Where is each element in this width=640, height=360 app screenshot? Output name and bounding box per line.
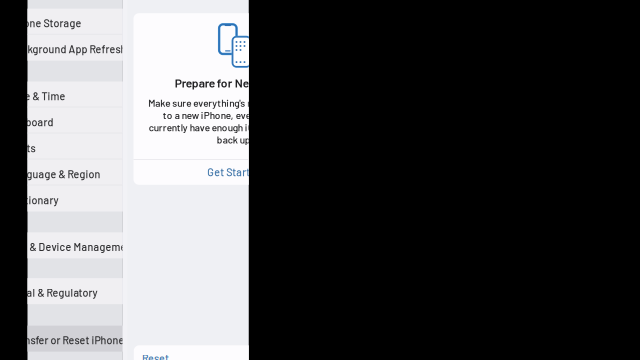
button[interactable]: Keyboard — [27, 0, 123, 26]
staticText: Prepare for New iPhone — [175, 75, 295, 90]
button[interactable]: Dictionary — [27, 0, 123, 26]
staticText: Transfer or Reset iPhone — [8, 334, 124, 346]
staticText: iPhone Storage — [8, 17, 81, 29]
staticText: back up. — [217, 133, 253, 145]
staticText: Language & Region — [8, 167, 100, 180]
button[interactable]: Reset — [134, 345, 336, 360]
button[interactable]: Get Started — [133, 13, 336, 39]
staticText: currently have enough iCloud storage to — [149, 121, 321, 133]
staticText: Reset — [142, 352, 169, 360]
staticText: Keyboard — [8, 115, 53, 128]
button[interactable]: Background App Refresh — [27, 0, 123, 26]
staticText: Background App Refresh — [8, 43, 126, 55]
staticText: VPN & Device Management — [8, 240, 136, 253]
staticText: Legal & Regulatory — [8, 286, 97, 299]
staticText: Date & Time — [8, 89, 65, 102]
staticText: Make sure everything's ready to transfer — [148, 97, 321, 109]
button[interactable]: Legal & Regulatory — [27, 0, 123, 26]
staticText: Get Started — [207, 165, 262, 178]
button[interactable]: Language & Region — [27, 0, 123, 26]
button[interactable]: Date & Time — [27, 0, 123, 26]
button[interactable]: VPN & Device Management — [27, 0, 123, 26]
staticText: Dictionary — [8, 193, 58, 206]
staticText: to a new iPhone, even if you don't — [163, 109, 307, 121]
staticText: Fonts — [8, 141, 35, 154]
button[interactable]: iPhone Storage — [27, 0, 123, 26]
button[interactable]: Fonts — [27, 0, 123, 26]
button[interactable]: Transfer or Reset iPhone — [27, 0, 123, 26]
